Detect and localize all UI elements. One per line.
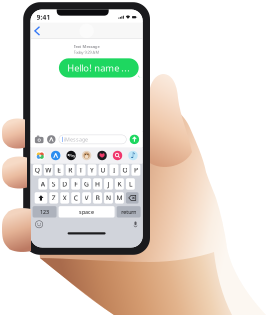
staticText: L	[129, 179, 132, 188]
staticText: Q	[35, 166, 40, 174]
button[interactable]: App	[32, 151, 48, 160]
button[interactable]: Dictate	[133, 221, 138, 228]
button[interactable]: R	[66, 164, 75, 176]
staticText: M	[116, 193, 122, 202]
button[interactable]: Send	[130, 135, 139, 144]
button[interactable]: A	[38, 178, 47, 190]
staticText: K	[117, 179, 121, 188]
button[interactable]: Apps	[47, 135, 55, 144]
staticText: 123	[40, 208, 49, 215]
staticText: O	[122, 166, 127, 174]
button[interactable]: T	[77, 164, 86, 176]
staticText: space	[79, 208, 94, 215]
button[interactable]: H	[93, 178, 102, 190]
button[interactable]: Back	[30, 23, 46, 38]
button[interactable]: Camera	[35, 135, 44, 143]
button[interactable]: G	[82, 178, 91, 190]
staticText: V	[85, 193, 89, 202]
staticText: G	[84, 179, 89, 188]
staticText: ♪	[130, 151, 135, 160]
button[interactable]: Q	[33, 164, 42, 176]
button[interactable]: Y	[88, 164, 96, 176]
button[interactable]: App	[79, 151, 94, 160]
button[interactable]: M	[115, 192, 124, 204]
staticText: E	[57, 166, 61, 174]
button[interactable]: App	[125, 151, 141, 160]
button[interactable]: X	[60, 192, 69, 204]
button[interactable]: App	[110, 151, 125, 160]
staticText: N	[106, 193, 111, 202]
staticText: P	[134, 166, 138, 174]
button[interactable]: W	[44, 164, 53, 176]
button[interactable]: O	[120, 164, 129, 176]
staticText: Today 9:29 AM	[74, 50, 100, 55]
staticText: R	[68, 166, 72, 174]
staticText: T	[79, 166, 83, 174]
staticText: X	[63, 193, 67, 202]
staticText: F	[74, 179, 77, 188]
staticText: Text Message	[74, 44, 100, 49]
button[interactable]: App	[94, 151, 110, 160]
staticText: 9:41	[36, 13, 50, 22]
staticText: iMessage	[64, 136, 88, 143]
button[interactable]: F	[71, 178, 80, 190]
button[interactable]: V	[82, 192, 91, 204]
staticText: A	[41, 179, 45, 188]
button[interactable]: J	[104, 178, 113, 190]
button[interactable]: U	[99, 164, 107, 176]
staticText: B	[95, 193, 99, 202]
button[interactable]: I	[109, 164, 118, 176]
staticText: Pay	[69, 153, 75, 158]
staticText: C	[74, 193, 78, 202]
staticText: H	[95, 179, 100, 188]
button[interactable]: App	[48, 151, 63, 160]
button[interactable]: Emoji	[35, 221, 43, 228]
button[interactable]: N	[104, 192, 113, 204]
button[interactable]: K	[115, 178, 124, 190]
button[interactable]: 123	[33, 206, 57, 218]
staticText: return	[121, 208, 136, 215]
button[interactable]: Shift	[35, 192, 47, 204]
button[interactable]: Z	[49, 192, 58, 204]
staticText: Z	[52, 193, 56, 202]
staticText: Hello! name ...	[67, 62, 130, 74]
button[interactable]: C	[71, 192, 80, 204]
button[interactable]: Delete	[126, 192, 139, 204]
staticText: Y	[90, 166, 94, 174]
staticText: U	[100, 166, 105, 174]
button[interactable]: D	[60, 178, 69, 190]
button[interactable]: L	[126, 178, 135, 190]
button[interactable]: B	[93, 192, 102, 204]
staticText: S	[52, 179, 56, 188]
button[interactable]: App	[63, 151, 79, 160]
staticText: J	[107, 179, 109, 188]
button[interactable]: S	[49, 178, 58, 190]
button[interactable]: space	[59, 206, 115, 218]
staticText: D	[62, 179, 67, 188]
staticText: W	[45, 166, 51, 174]
button[interactable]: P	[131, 164, 140, 176]
button[interactable]: return	[117, 206, 141, 218]
staticText: I	[113, 166, 115, 174]
button[interactable]: E	[55, 164, 64, 176]
